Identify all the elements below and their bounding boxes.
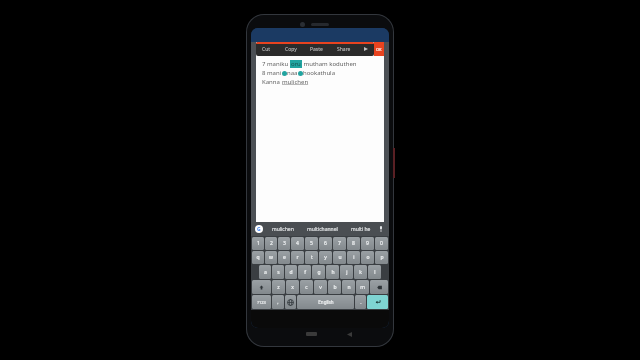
button[interactable]: z <box>272 280 285 294</box>
button[interactable]: j <box>340 265 353 279</box>
button[interactable]: Change language <box>285 295 296 309</box>
staticText: ?123 <box>257 300 266 305</box>
button[interactable]: l <box>368 265 381 279</box>
staticText: 5 <box>310 240 313 247</box>
staticText: w <box>269 254 273 261</box>
button[interactable]: b <box>328 280 341 294</box>
staticText: p <box>380 254 384 261</box>
staticText: 9 <box>366 240 369 247</box>
staticText: c <box>305 284 308 291</box>
button[interactable]: 1 <box>252 237 264 250</box>
staticText: j <box>346 269 348 276</box>
button[interactable]: Shift <box>252 280 271 294</box>
button[interactable]: multichannel <box>306 226 339 233</box>
button[interactable]: m <box>356 280 369 294</box>
button[interactable]: e <box>278 251 290 264</box>
staticText: q <box>256 254 260 261</box>
staticText: n <box>347 284 351 291</box>
button[interactable]: . <box>355 295 366 309</box>
button[interactable]: f <box>298 265 311 279</box>
button[interactable]: mulichen <box>271 226 295 233</box>
button[interactable]: o <box>361 251 374 264</box>
staticText: mulichen <box>272 226 294 233</box>
staticText: English <box>318 299 334 305</box>
staticText: G <box>257 226 261 233</box>
button[interactable]: y <box>319 251 332 264</box>
button[interactable]: 0 <box>375 237 388 250</box>
button[interactable]: Home <box>306 332 317 336</box>
staticText: . <box>360 299 362 306</box>
staticText: hookathula <box>303 69 336 77</box>
button[interactable]: 3 <box>278 237 290 250</box>
button[interactable]: 2 <box>265 237 277 250</box>
staticText: a <box>264 269 267 276</box>
button[interactable]: Share <box>335 46 353 53</box>
staticText: 8 <box>352 240 355 247</box>
button[interactable]: 6 <box>319 237 332 250</box>
button[interactable]: ?123 <box>252 295 271 309</box>
staticText: r <box>296 254 299 261</box>
button[interactable]: 9 <box>361 237 374 250</box>
button[interactable]: 5 <box>305 237 318 250</box>
staticText: t <box>311 254 313 261</box>
staticText: Share <box>337 46 351 53</box>
staticText: Copy <box>285 46 297 53</box>
staticText: s <box>277 269 280 276</box>
button[interactable]: OK <box>374 42 384 56</box>
button[interactable]: Voice input <box>377 225 385 233</box>
button[interactable]: x <box>286 280 299 294</box>
button[interactable]: English <box>297 295 354 309</box>
staticText: v <box>319 284 322 291</box>
button[interactable]: c <box>300 280 313 294</box>
button[interactable]: p <box>375 251 388 264</box>
staticText: naa <box>287 69 298 77</box>
button[interactable]: 7 <box>333 237 346 250</box>
button[interactable]: d <box>285 265 297 279</box>
staticText: o <box>366 254 370 261</box>
staticText: multi he <box>351 226 371 233</box>
button[interactable]: More options <box>362 45 370 53</box>
button[interactable]: k <box>354 265 367 279</box>
staticText: 0 <box>380 240 383 247</box>
staticText: mulichen <box>282 78 309 86</box>
staticText: 7 <box>338 240 341 247</box>
staticText: Cut <box>262 46 271 53</box>
staticText: u <box>338 254 342 261</box>
button[interactable]: i <box>347 251 360 264</box>
button[interactable]: , <box>272 295 284 309</box>
button[interactable]: Google <box>255 225 263 233</box>
button[interactable]: Enter <box>367 295 388 309</box>
button[interactable]: q <box>252 251 264 264</box>
button[interactable]: g <box>312 265 325 279</box>
staticText: y <box>324 254 327 261</box>
staticText: mutham koduthen <box>302 60 357 68</box>
button[interactable]: Cut <box>260 46 273 53</box>
button[interactable]: n <box>342 280 355 294</box>
staticText: x <box>291 284 294 291</box>
staticText: 8 mani <box>262 69 282 77</box>
button[interactable]: multi he <box>350 226 372 233</box>
staticText: m <box>360 284 365 291</box>
button[interactable]: Paste <box>308 46 325 53</box>
staticText: oru <box>291 60 301 68</box>
button[interactable]: t <box>305 251 318 264</box>
button[interactable]: v <box>314 280 327 294</box>
button[interactable]: 8 <box>347 237 360 250</box>
staticText: Kanna <box>262 78 282 86</box>
button[interactable]: w <box>265 251 277 264</box>
button[interactable]: Backspace <box>370 280 388 294</box>
staticText: 2 <box>270 240 273 247</box>
staticText: multichannel <box>307 226 338 233</box>
button[interactable]: h <box>326 265 339 279</box>
staticText: 4 <box>296 240 299 247</box>
button[interactable]: s <box>272 265 284 279</box>
button[interactable]: a <box>259 265 271 279</box>
staticText: 7 maniku <box>262 60 290 68</box>
button[interactable]: u <box>333 251 346 264</box>
button[interactable]: Back <box>346 331 352 337</box>
staticText: z <box>277 284 280 291</box>
button[interactable]: r <box>291 251 304 264</box>
staticText: , <box>277 299 279 306</box>
button[interactable]: 4 <box>291 237 304 250</box>
button[interactable]: Copy <box>283 46 299 53</box>
